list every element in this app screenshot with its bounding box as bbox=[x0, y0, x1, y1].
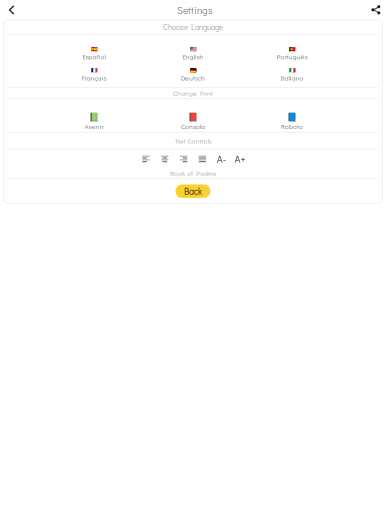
staticText: 🇫🇷 bbox=[90, 67, 97, 73]
staticText: Deutsch bbox=[181, 73, 205, 82]
button[interactable]: 📗 bbox=[44, 100, 143, 130]
button[interactable]: 📕 bbox=[143, 100, 242, 130]
staticText: Back bbox=[184, 185, 202, 197]
staticText: 🇪🇸 bbox=[90, 46, 97, 52]
button[interactable]: 🇮🇹 bbox=[242, 61, 341, 83]
staticText: 📗 bbox=[89, 113, 99, 122]
staticText: 🇵🇹 bbox=[288, 46, 295, 52]
button[interactable]: Align bbox=[174, 152, 193, 166]
staticText: A- bbox=[217, 152, 226, 165]
staticText: Español bbox=[82, 52, 105, 61]
staticText: Italiano bbox=[280, 73, 303, 82]
button[interactable]: 🇩🇪 bbox=[143, 61, 242, 83]
staticText: Português bbox=[276, 52, 307, 61]
button[interactable]: A- bbox=[212, 152, 231, 166]
staticText: Text Controls bbox=[174, 136, 211, 145]
staticText: 📕 bbox=[188, 113, 198, 122]
staticText: 📘 bbox=[287, 113, 297, 122]
button[interactable]: Share bbox=[366, 0, 386, 20]
button[interactable]: A+ bbox=[231, 152, 249, 166]
button[interactable]: 📘 bbox=[242, 100, 341, 130]
staticText: A+ bbox=[234, 152, 245, 165]
staticText: 🇩🇪 bbox=[189, 67, 196, 73]
button[interactable]: Align bbox=[155, 152, 174, 166]
button[interactable]: Back bbox=[175, 184, 210, 198]
button[interactable]: 🇪🇸 bbox=[44, 40, 143, 61]
button[interactable]: Back bbox=[0, 0, 24, 20]
button[interactable]: Align bbox=[137, 152, 155, 166]
staticText: 🇮🇹 bbox=[288, 67, 295, 73]
staticText: Roboto bbox=[281, 122, 303, 131]
staticText: Settings bbox=[177, 3, 213, 16]
button[interactable]: 🇵🇹 bbox=[242, 40, 341, 61]
staticText: Avenir bbox=[84, 122, 103, 131]
staticText: English bbox=[182, 52, 203, 61]
staticText: Français bbox=[81, 73, 106, 82]
staticText: Choose Language bbox=[163, 22, 223, 32]
staticText: Consola bbox=[181, 122, 205, 131]
staticText: 🇺🇸 bbox=[189, 46, 196, 52]
staticText: Change Font bbox=[173, 88, 213, 98]
button[interactable]: Align bbox=[193, 152, 212, 166]
button[interactable]: 🇺🇸 bbox=[143, 40, 242, 61]
staticText: Book of Psalms bbox=[170, 168, 216, 177]
button[interactable]: 🇫🇷 bbox=[44, 61, 143, 83]
